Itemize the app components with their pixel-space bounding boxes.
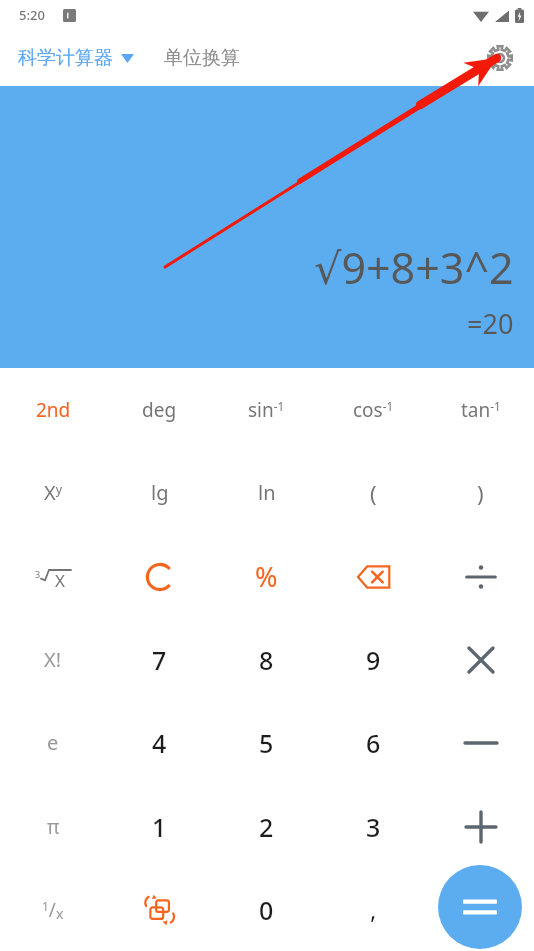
staticText: 3	[366, 810, 381, 844]
staticText: =20	[467, 305, 514, 342]
button[interactable]	[106, 868, 213, 951]
button[interactable]: 3	[320, 785, 427, 868]
button[interactable]: ln	[213, 451, 320, 534]
staticText: √9+8+3^2	[314, 238, 514, 297]
button[interactable]: Xy	[0, 451, 106, 534]
staticText: π	[47, 814, 60, 840]
button[interactable]: X!	[0, 618, 106, 701]
button[interactable]: (	[320, 451, 427, 534]
staticText: Xy	[44, 479, 63, 506]
button[interactable]: 科学计算器	[14, 40, 138, 76]
staticText: X!	[44, 646, 62, 673]
staticText: (	[370, 478, 377, 508]
button[interactable]: Equals	[438, 865, 522, 949]
staticText: 5:20	[19, 6, 45, 24]
staticText: 7	[152, 643, 167, 677]
staticText: tan-1	[461, 397, 501, 423]
button[interactable]: ,	[320, 868, 427, 951]
staticText: 1	[152, 810, 167, 844]
button[interactable]: deg	[106, 368, 213, 451]
button[interactable]: 2	[213, 785, 320, 868]
button[interactable]: e	[0, 701, 106, 784]
staticText: e	[47, 729, 59, 756]
button[interactable]: 7	[106, 618, 213, 701]
button[interactable]	[320, 535, 427, 618]
staticText: ,	[370, 893, 377, 926]
staticText: lg	[151, 479, 169, 506]
staticText: 3	[35, 568, 41, 580]
staticText: 8	[259, 643, 274, 677]
button[interactable]: 6	[320, 701, 427, 784]
staticText: 9	[366, 643, 381, 677]
button[interactable]: 2nd	[0, 368, 106, 451]
button[interactable]	[427, 785, 534, 868]
staticText: ln	[258, 479, 276, 506]
button[interactable]: X	[0, 535, 106, 618]
button[interactable]	[427, 618, 534, 701]
staticText: 5	[259, 726, 274, 760]
staticText: 1/x	[42, 897, 64, 923]
button[interactable]: 4	[106, 701, 213, 784]
button[interactable]: cos-1	[320, 368, 427, 451]
button[interactable]	[106, 535, 213, 618]
staticText: deg	[142, 397, 177, 423]
button[interactable]: π	[0, 785, 106, 868]
staticText: 6	[366, 726, 381, 760]
staticText: 2	[259, 810, 274, 844]
button[interactable]	[427, 535, 534, 618]
button[interactable]: %	[213, 535, 320, 618]
button[interactable]: sin-1	[213, 368, 320, 451]
staticText: 单位换算	[164, 46, 240, 70]
staticText: sin-1	[248, 397, 285, 423]
button[interactable]: tan-1	[427, 368, 534, 451]
staticText: 4	[152, 726, 167, 760]
button[interactable]: 1/x	[0, 868, 106, 951]
button[interactable]: 1	[106, 785, 213, 868]
button[interactable]: 5	[213, 701, 320, 784]
button[interactable]: 9	[320, 618, 427, 701]
button[interactable]: lg	[106, 451, 213, 534]
staticText: 科学计算器	[18, 46, 113, 70]
staticText: %	[255, 558, 278, 595]
staticText: 2nd	[36, 397, 71, 423]
staticText: 0	[259, 893, 274, 927]
staticText: cos-1	[353, 397, 394, 423]
button[interactable]: 8	[213, 618, 320, 701]
button[interactable]: 单位换算	[160, 40, 244, 76]
staticText: X	[55, 569, 65, 592]
staticText: )	[477, 478, 484, 508]
button[interactable]: 0	[213, 868, 320, 951]
button[interactable]	[427, 868, 534, 951]
button[interactable]	[427, 701, 534, 784]
button[interactable]: Settings	[478, 36, 522, 80]
button[interactable]: )	[427, 451, 534, 534]
